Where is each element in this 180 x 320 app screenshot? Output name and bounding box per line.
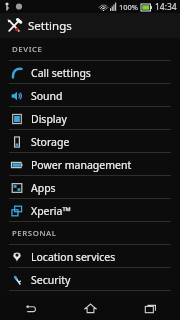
staticText: Security xyxy=(31,273,71,287)
staticText: Display xyxy=(31,112,67,126)
button[interactable]: Home xyxy=(60,296,120,320)
button[interactable]: Location services xyxy=(0,245,180,268)
button[interactable]: Recent apps xyxy=(120,296,180,320)
button[interactable]: Settings xyxy=(0,13,180,38)
button[interactable]: Sound xyxy=(0,84,180,107)
button[interactable]: Apps xyxy=(0,176,180,199)
other: Settings xyxy=(6,18,22,34)
staticText: 14:34 xyxy=(155,1,177,13)
staticText: Apps xyxy=(31,181,56,195)
staticText: 100% xyxy=(119,2,139,12)
button[interactable]: Call settings xyxy=(0,61,180,84)
staticText: PERSONAL xyxy=(12,228,57,239)
button[interactable]: Display xyxy=(0,107,180,130)
staticText: Settings xyxy=(28,18,72,34)
staticText: Location services xyxy=(31,250,116,264)
staticText: Power management xyxy=(31,158,132,172)
button[interactable]: Xperia™ xyxy=(0,199,180,222)
button[interactable]: Back xyxy=(0,296,60,320)
button[interactable]: Power management xyxy=(0,153,180,176)
staticText: Xperia™ xyxy=(31,204,71,218)
button[interactable]: Security xyxy=(0,268,180,291)
staticText: Call settings xyxy=(31,66,91,80)
button[interactable]: Storage xyxy=(0,130,180,153)
staticText: Sound xyxy=(31,89,63,103)
staticText: DEVICE xyxy=(12,44,43,55)
staticText: Storage xyxy=(31,135,70,149)
